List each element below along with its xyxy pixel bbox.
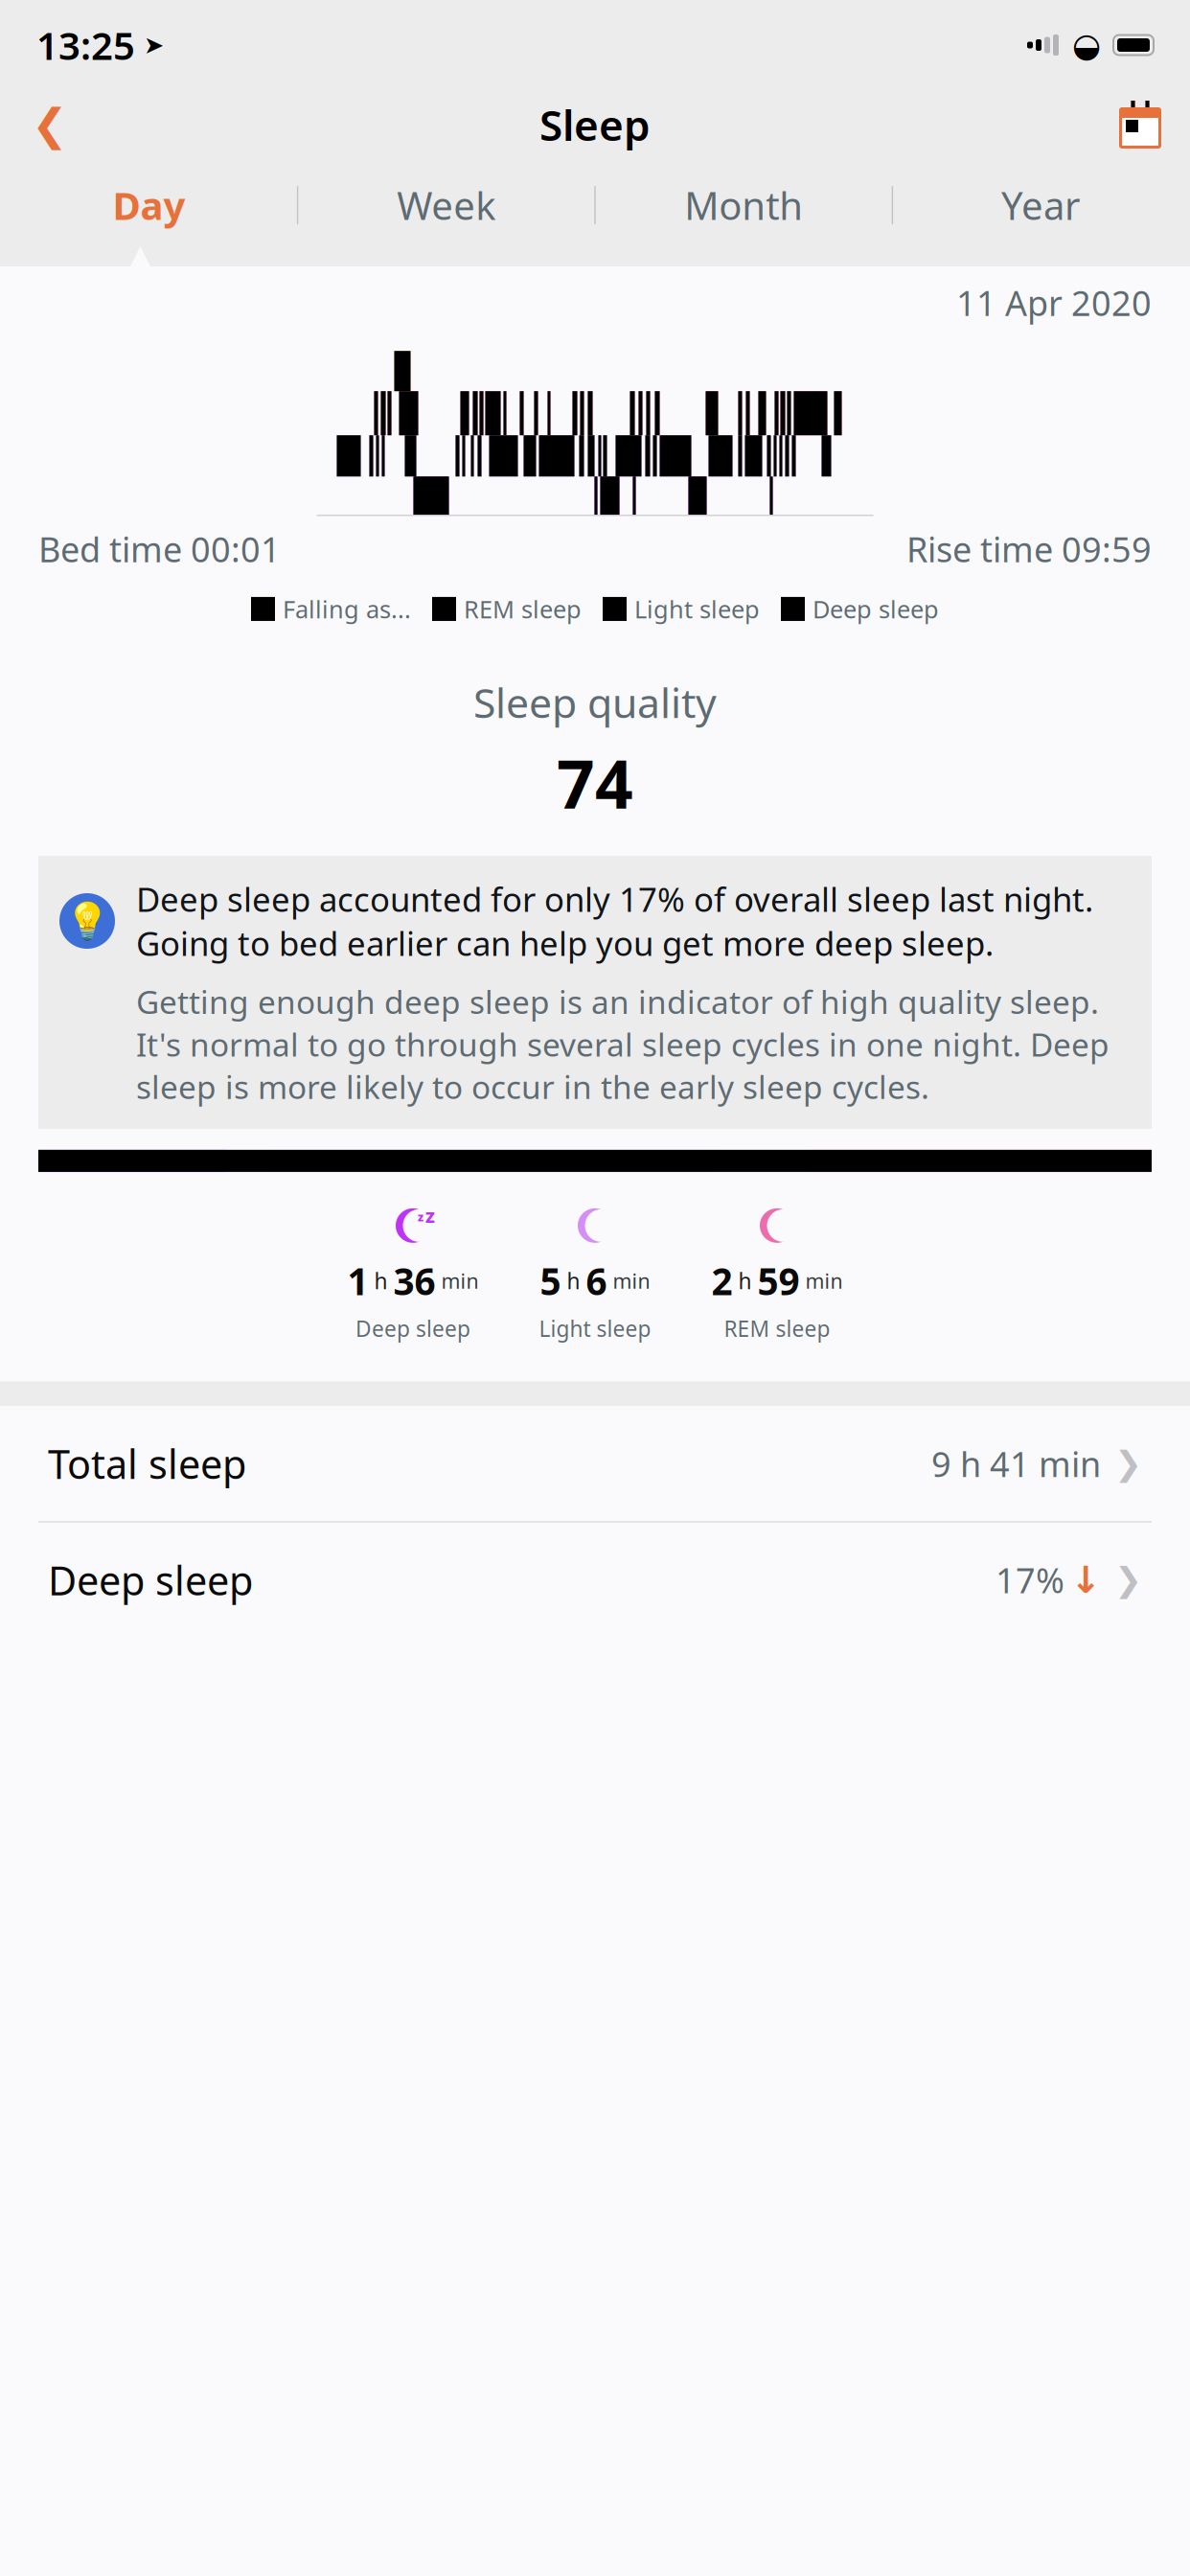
staticText: 74 <box>557 739 633 827</box>
staticText: 5 <box>540 1256 561 1305</box>
staticText: 9 h 41 min <box>931 1441 1101 1487</box>
button[interactable]: Back <box>10 91 90 158</box>
staticText: ➤ <box>144 31 164 59</box>
button[interactable]: Week <box>298 161 594 249</box>
button[interactable]: Calendar <box>1100 91 1180 158</box>
staticText: Deep sleep <box>812 593 939 625</box>
staticText: h <box>368 1266 393 1295</box>
staticText: Day <box>112 180 185 230</box>
staticText: Z <box>425 1207 435 1227</box>
button[interactable]: Day <box>1 161 297 249</box>
staticText: Month <box>684 180 803 230</box>
staticText: Light sleep <box>539 1314 651 1343</box>
staticText: 36 <box>393 1256 435 1305</box>
staticText: ❯ <box>1114 1445 1142 1482</box>
staticText: Sleep quality <box>473 675 717 729</box>
staticText: 2 <box>711 1256 732 1305</box>
button[interactable]: Year <box>893 161 1189 249</box>
staticText: 1 <box>347 1256 368 1305</box>
staticText: Total sleep <box>48 1437 246 1490</box>
staticText: Deep sleep <box>355 1314 470 1343</box>
button[interactable]: Deep sleep <box>0 1522 1190 1637</box>
staticText: min <box>800 1267 843 1294</box>
staticText: min <box>435 1267 479 1294</box>
staticText: Falling as... <box>283 593 411 625</box>
staticText: Deep sleep <box>48 1554 253 1606</box>
staticText: Rise time 09:59 <box>906 526 1152 572</box>
button[interactable]: Month <box>596 161 892 249</box>
staticText: 💡 <box>65 901 109 941</box>
staticText: h <box>561 1266 586 1295</box>
staticText: ▲ <box>126 236 155 280</box>
staticText: Bed time 00:01 <box>38 526 281 572</box>
staticText: REM sleep <box>724 1314 830 1343</box>
staticText: Week <box>397 180 496 230</box>
staticText: Deep sleep accounted for only 17% of ove… <box>136 877 1093 965</box>
staticText: ↓ <box>1070 1559 1101 1601</box>
staticText: Getting enough deep sleep is an indicato… <box>136 980 1110 1108</box>
staticText: 59 <box>757 1256 800 1305</box>
staticText: z <box>418 1209 423 1225</box>
staticText: min <box>607 1267 650 1294</box>
staticText: ◒ <box>1072 26 1101 64</box>
staticText: h <box>732 1266 757 1295</box>
staticText: 13:25 <box>36 20 135 70</box>
staticText: 6 <box>586 1256 607 1305</box>
staticText: 17% <box>995 1557 1064 1603</box>
staticText: Year <box>1001 180 1081 230</box>
staticText: Light sleep <box>634 593 760 625</box>
staticText: ❮ <box>32 100 68 149</box>
staticText: 11 Apr 2020 <box>956 280 1152 326</box>
staticText: ❯ <box>1114 1561 1142 1599</box>
staticText: Sleep <box>539 97 651 153</box>
button[interactable]: Total sleep <box>0 1406 1190 1521</box>
staticText: REM sleep <box>464 593 582 625</box>
